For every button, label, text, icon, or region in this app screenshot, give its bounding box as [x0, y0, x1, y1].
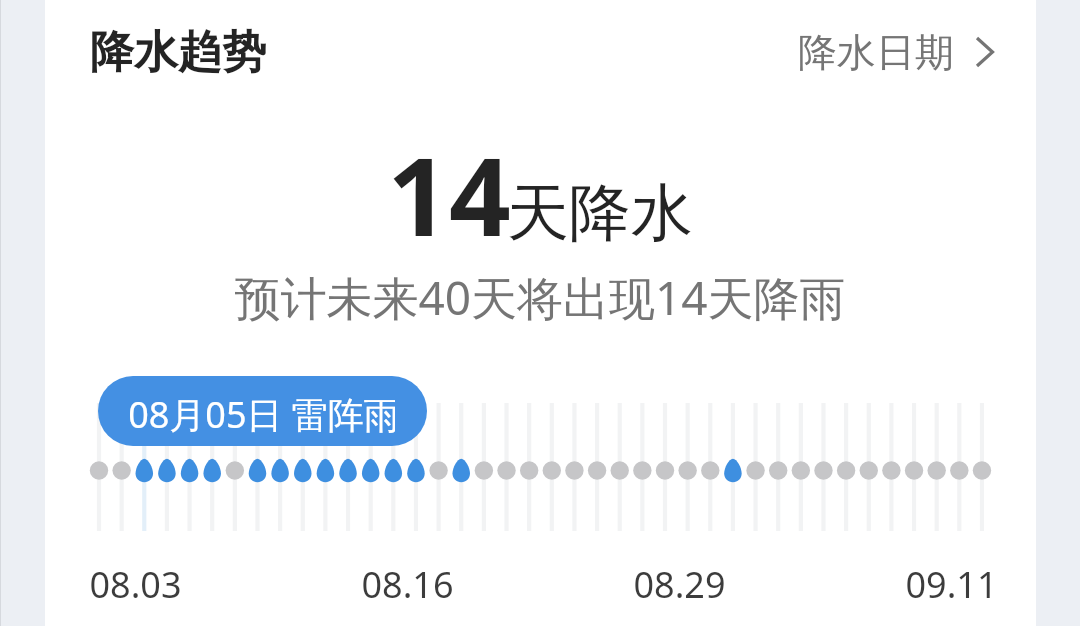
staticText: 08月05日 雷阵雨 — [128, 390, 395, 439]
staticText: 09.11 — [905, 560, 998, 609]
staticText: 08.16 — [361, 560, 454, 609]
staticText: 预计未来40天将出现14天降雨 — [234, 266, 846, 329]
staticText: 08.03 — [89, 560, 182, 609]
button[interactable]: 降水趋势 — [90, 25, 266, 80]
staticText: 08.29 — [633, 560, 726, 609]
staticText: 天降水 — [507, 174, 693, 252]
staticText: 14 — [387, 121, 511, 268]
staticText: 降水日期 — [798, 28, 954, 77]
button[interactable]: 08月05日 雷阵雨 — [98, 376, 427, 446]
staticText: 降水趋势 — [90, 25, 266, 80]
button[interactable]: 降水日期 — [790, 19, 1015, 85]
